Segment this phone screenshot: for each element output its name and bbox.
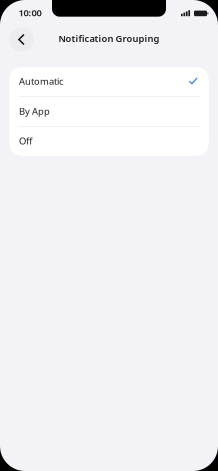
staticText: By App (19, 105, 50, 117)
button[interactable]: Back (9, 27, 34, 52)
staticText: Off (19, 135, 32, 147)
button[interactable]: Selected (9, 67, 209, 97)
button[interactable]: Off (9, 127, 209, 156)
button[interactable]: By App (9, 97, 209, 127)
staticText: 10:00 (19, 6, 42, 19)
staticText: Notification Grouping (58, 32, 159, 45)
staticText: Automatic (19, 75, 63, 87)
